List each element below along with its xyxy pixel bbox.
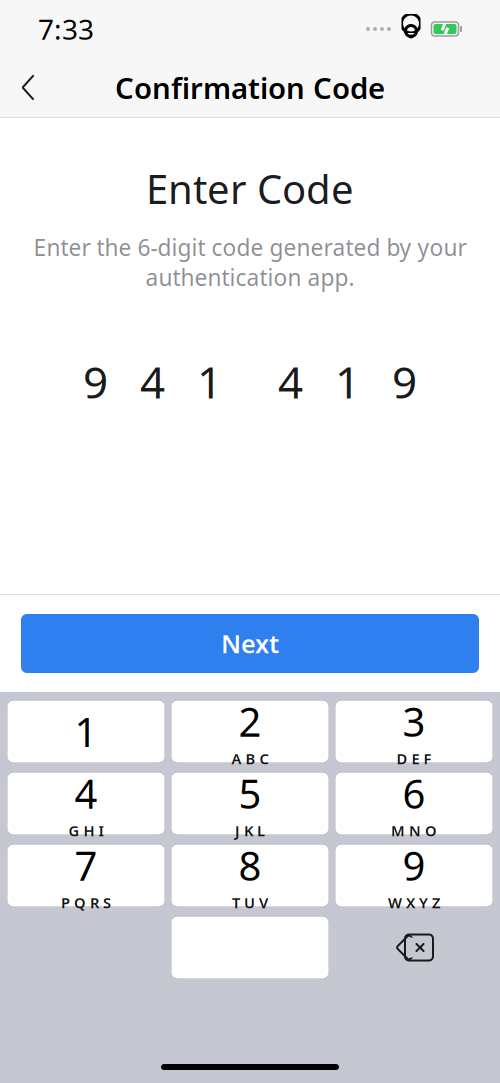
staticText: W X Y Z: [388, 893, 440, 912]
staticText: Next: [221, 627, 279, 660]
staticText: 4: [74, 767, 97, 820]
staticText: 7: [74, 839, 97, 892]
staticText: J K L: [235, 821, 265, 840]
button[interactable]: 0: [171, 916, 328, 979]
button[interactable]: 2: [171, 700, 328, 763]
staticText: 2: [238, 695, 261, 748]
staticText: G H I: [68, 821, 103, 840]
button[interactable]: 1: [7, 700, 164, 763]
staticText: 1: [197, 352, 222, 410]
button[interactable]: 7: [7, 844, 164, 907]
staticText: M N O: [391, 821, 437, 840]
button[interactable]: Delete: [335, 916, 492, 979]
button[interactable]: 3: [335, 700, 492, 763]
staticText: 9: [402, 839, 425, 892]
staticText: Confirmation Code: [115, 68, 385, 107]
button[interactable]: 4: [7, 772, 164, 835]
staticText: 7:33: [38, 10, 94, 48]
button[interactable]: 9: [335, 844, 492, 907]
staticText: T U V: [232, 893, 268, 912]
staticText: 4: [140, 352, 165, 410]
staticText: 6: [402, 767, 425, 820]
staticText: 3: [402, 695, 425, 748]
staticText: 1: [335, 352, 360, 410]
staticText: authentication app.: [145, 262, 354, 292]
staticText: A B C: [231, 749, 268, 768]
staticText: 8: [238, 839, 261, 892]
staticText: 9: [83, 352, 108, 410]
button[interactable]: 5: [171, 772, 328, 835]
button[interactable]: 8: [171, 844, 328, 907]
staticText: 4: [278, 352, 303, 410]
staticText: D E F: [396, 749, 431, 768]
button[interactable]: 6: [335, 772, 492, 835]
staticText: 1: [74, 705, 97, 758]
staticText: Enter the 6-digit code generated by your: [33, 232, 466, 262]
button[interactable]: Back: [0, 58, 56, 116]
staticText: Enter Code: [146, 162, 354, 215]
staticText: P Q R S: [61, 893, 111, 912]
button[interactable]: Next: [21, 614, 479, 673]
staticText: 5: [238, 767, 261, 820]
staticText: 9: [392, 352, 417, 410]
